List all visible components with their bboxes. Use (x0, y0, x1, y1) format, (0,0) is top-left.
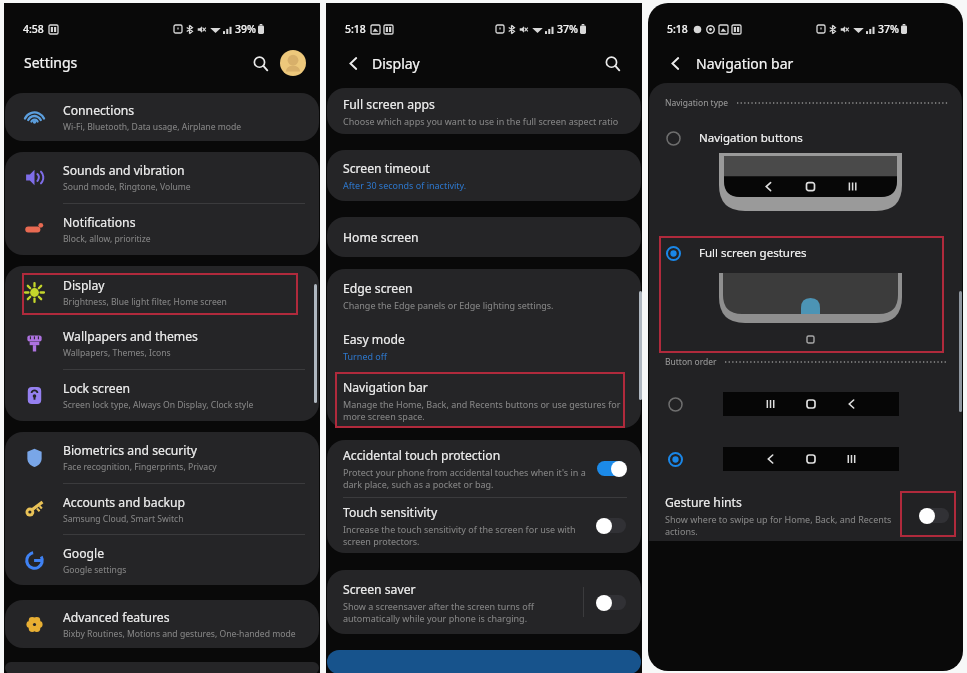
staticText: Home screen (343, 229, 419, 246)
staticText: Lock screen (63, 380, 131, 397)
staticText: Wallpapers, Themes, Icons (63, 347, 171, 359)
staticText: Bixby Routines, Motions and gestures, On… (63, 628, 296, 640)
button[interactable]: Display (5, 266, 319, 318)
staticText: Brightness, Blue light filter, Home scre… (63, 296, 227, 308)
button[interactable]: Home screen (327, 217, 641, 257)
button[interactable]: Biometrics and security (5, 432, 319, 483)
staticText: After 30 seconds of inactivity. (343, 179, 467, 191)
button[interactable]: Accounts and backup (5, 484, 319, 534)
staticText: Choose which apps you want to use in the… (343, 115, 619, 127)
button[interactable]: Search (600, 51, 624, 75)
button[interactable]: Sounds and vibration (5, 152, 319, 203)
staticText: Notifications (63, 214, 136, 231)
button[interactable]: Navigation buttons preview (659, 153, 962, 233)
staticText: Full screen gestures (699, 245, 807, 261)
button[interactable]: Accidental touch protection (327, 440, 641, 497)
staticText: Accidental touch protection (343, 447, 501, 464)
button[interactable]: Search (247, 50, 273, 76)
button[interactable]: Switch off (919, 507, 950, 524)
button[interactable]: Back (342, 52, 364, 74)
staticText: Manage the Home, Back, and Recents butto… (343, 398, 631, 422)
staticText: Settings (24, 53, 78, 72)
button[interactable]: Screen timeout (327, 150, 641, 201)
staticText: Sound mode, Ringtone, Volume (63, 181, 191, 193)
staticText: Gesture hints (665, 494, 742, 511)
staticText: Touch sensitivity (343, 504, 438, 521)
button[interactable]: Connections (5, 93, 319, 141)
staticText: 5:18 (667, 22, 688, 36)
staticText: Navigation bar (343, 379, 428, 396)
staticText: Connections (63, 102, 135, 119)
button[interactable]: Select option (667, 451, 683, 467)
staticText: Google (63, 545, 105, 562)
button[interactable]: Switch on (596, 460, 627, 477)
staticText: Easy mode (343, 331, 405, 348)
button[interactable]: Full screen apps (327, 88, 641, 134)
button[interactable]: Select option (665, 245, 681, 261)
button[interactable]: Switch off (596, 594, 627, 611)
button[interactable]: Back, Home, Recents button order (649, 428, 962, 489)
staticText: Show where to swipe up for Home, Back, a… (665, 513, 909, 537)
button[interactable]: Gesture hints (649, 489, 962, 541)
staticText: Wi-Fi, Bluetooth, Data usage, Airplane m… (63, 121, 242, 133)
staticText: Sounds and vibration (63, 162, 185, 179)
staticText: 39% (235, 22, 256, 36)
staticText: Biometrics and security (63, 442, 198, 459)
staticText: Screen saver (343, 581, 416, 598)
staticText: Advanced features (63, 609, 170, 626)
button[interactable]: Wallpapers and themes (5, 318, 319, 369)
staticText: Screen lock type, Always On Display, Clo… (63, 399, 254, 411)
staticText: Button order (665, 356, 717, 368)
staticText: Screen timeout (343, 160, 430, 177)
staticText: Face recognition, Fingerprints, Privacy (63, 461, 217, 473)
button[interactable]: Edge screen (327, 269, 641, 321)
staticText: Turned off (343, 350, 387, 362)
staticText: Navigation bar (696, 54, 794, 73)
button[interactable]: Navigation bar (327, 372, 641, 428)
staticText: Increase the touch sensitivity of the sc… (343, 523, 586, 547)
button[interactable]: Switch off (596, 517, 627, 534)
button[interactable]: Screen saver (327, 570, 641, 634)
button[interactable]: Select option (667, 396, 683, 412)
staticText: Display (372, 54, 420, 73)
staticText: Google settings (63, 564, 127, 576)
staticText: Block, allow, prioritize (63, 233, 151, 245)
button[interactable]: Easy mode (327, 321, 641, 372)
button[interactable]: Recents, Home, Back button order (649, 379, 962, 428)
button[interactable]: Full screen gestures preview (659, 273, 962, 345)
staticText: Wallpapers and themes (63, 328, 198, 345)
staticText: Edge screen (343, 280, 413, 297)
button[interactable]: Touch sensitivity (327, 498, 641, 553)
button[interactable]: Looking for something else? (327, 650, 641, 673)
staticText: Display (63, 277, 105, 294)
button[interactable]: Notifications (5, 204, 319, 255)
button[interactable]: Profile (280, 50, 306, 76)
button[interactable]: Select option (649, 123, 962, 153)
staticText: 5:18 (345, 22, 366, 36)
staticText: Change the Edge panels or Edge lighting … (343, 299, 554, 311)
staticText: Samsung Cloud, Smart Switch (63, 513, 184, 525)
button[interactable]: Google (5, 535, 319, 585)
button[interactable]: Advanced features (5, 600, 319, 648)
staticText: Navigation buttons (699, 130, 803, 146)
staticText: Full screen apps (343, 96, 435, 113)
button[interactable]: Lock screen (5, 370, 319, 421)
staticText: Show a screensaver after the screen turn… (343, 600, 573, 624)
button[interactable]: Back (664, 52, 686, 74)
staticText: 37% (557, 22, 578, 36)
button[interactable]: Select option (649, 233, 962, 273)
staticText: Navigation type (665, 97, 729, 109)
staticText: Protect your phone from accidental touch… (343, 466, 586, 490)
staticText: 37% (878, 22, 899, 36)
staticText: Accounts and backup (63, 494, 186, 511)
button[interactable]: Select option (665, 130, 681, 146)
staticText: 4:58 (23, 22, 44, 36)
